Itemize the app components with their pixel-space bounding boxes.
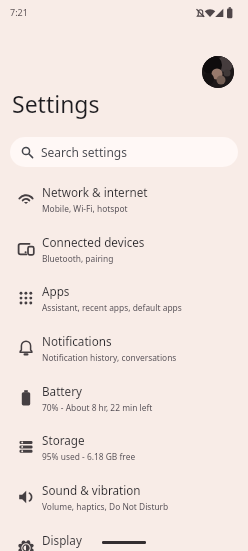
staticText: 95% used - 6.18 GB free: [42, 451, 136, 462]
staticText: Sound & vibration: [42, 482, 141, 498]
staticText: Apps: [42, 283, 70, 299]
staticText: Connected devices: [42, 234, 145, 250]
staticText: Display: [42, 532, 82, 548]
button[interactable]: Connected devices: [0, 224, 248, 274]
staticText: Assistant, recent apps, default apps: [42, 302, 182, 313]
staticText: Volume, haptics, Do Not Disturb: [42, 501, 169, 512]
staticText: 7:21: [10, 6, 28, 18]
staticText: Settings: [12, 88, 100, 119]
staticText: Storage: [42, 432, 85, 448]
button[interactable]: Notifications: [0, 323, 248, 373]
staticText: Notifications: [42, 333, 112, 349]
staticText: Notification history, conversations: [42, 352, 177, 363]
button[interactable]: Storage: [0, 422, 248, 472]
button[interactable]: Battery: [0, 373, 248, 423]
button[interactable]: Display: [0, 522, 248, 551]
staticText: Mobile, Wi-Fi, hotspot: [42, 203, 128, 214]
button[interactable]: Sound & vibration: [0, 472, 248, 522]
staticText: Battery: [42, 383, 82, 399]
button[interactable]: Apps: [0, 273, 248, 323]
staticText: Bluetooth, pairing: [42, 253, 114, 264]
button[interactable]: Search settings: [10, 137, 238, 167]
button[interactable]: [202, 56, 234, 88]
staticText: Network & internet: [42, 184, 148, 200]
staticText: 70% - About 8 hr, 22 min left: [42, 402, 153, 413]
button[interactable]: Network & internet: [0, 174, 248, 224]
staticText: Search settings: [41, 144, 127, 160]
